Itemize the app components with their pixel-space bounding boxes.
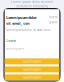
button[interactable]: Lorem ipsum — [5, 74, 59, 80]
staticText: Lorem ipsum — [6, 47, 23, 50]
staticText: Lorem ipsum — [23, 68, 40, 71]
staticText: Lorem ipsum dolor sit amet — [11, 0, 53, 4]
staticText: ipsum — [49, 20, 58, 24]
staticText: Lorem ipsum dolor — [6, 15, 37, 20]
staticText: Lorem ipsum dolor sit amet cons — [6, 28, 50, 32]
staticText: consectetur adipiscing — [16, 4, 48, 8]
staticText: Lorem — [6, 39, 16, 43]
staticText: sit amet, con — [6, 21, 29, 26]
button[interactable]: Lorem ipsum — [5, 58, 59, 64]
staticText: lorem — [49, 15, 58, 19]
staticText: Lorem ipsum — [23, 60, 40, 63]
button[interactable]: Lorem ipsum — [5, 66, 59, 72]
staticText: Lorem ipsum — [23, 76, 40, 79]
